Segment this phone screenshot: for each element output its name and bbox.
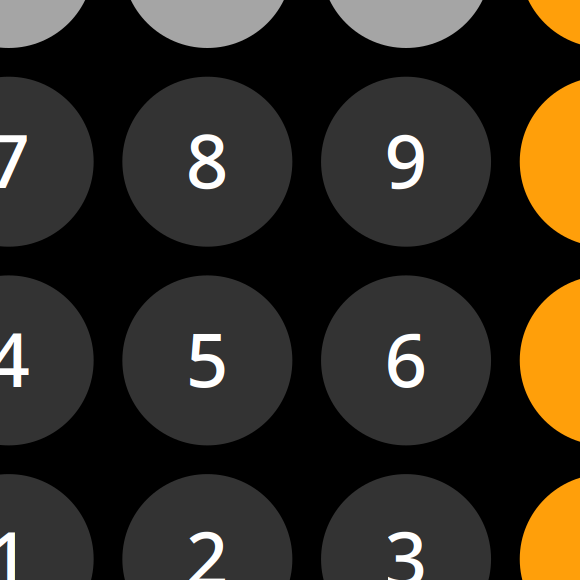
button[interactable]: 8 (122, 77, 292, 247)
button[interactable]: Add (520, 474, 580, 580)
staticText: 7 (0, 110, 30, 209)
button[interactable]: 5 (122, 275, 292, 445)
button[interactable]: 1 (0, 474, 94, 580)
button[interactable]: 4 (0, 275, 94, 445)
staticText: 3 (384, 507, 427, 580)
button[interactable]: 7 (0, 77, 94, 247)
button[interactable]: 3 (321, 474, 491, 580)
staticText: 4 (0, 308, 30, 408)
button[interactable]: Toggle sign (122, 0, 292, 48)
staticText: 6 (384, 308, 427, 408)
staticText: 2 (186, 507, 229, 580)
button[interactable]: 2 (122, 474, 292, 580)
button[interactable]: Multiply (520, 77, 580, 247)
button[interactable]: All clear (0, 0, 94, 48)
staticText: 5 (186, 308, 229, 408)
staticText: 9 (384, 110, 427, 209)
button[interactable]: Percent (321, 0, 491, 48)
button[interactable]: 9 (321, 77, 491, 247)
staticText: 8 (186, 110, 229, 209)
button[interactable]: 6 (321, 275, 491, 445)
button[interactable]: Divide (520, 0, 580, 48)
staticText: 1 (0, 507, 30, 580)
button[interactable]: Subtract (520, 275, 580, 445)
